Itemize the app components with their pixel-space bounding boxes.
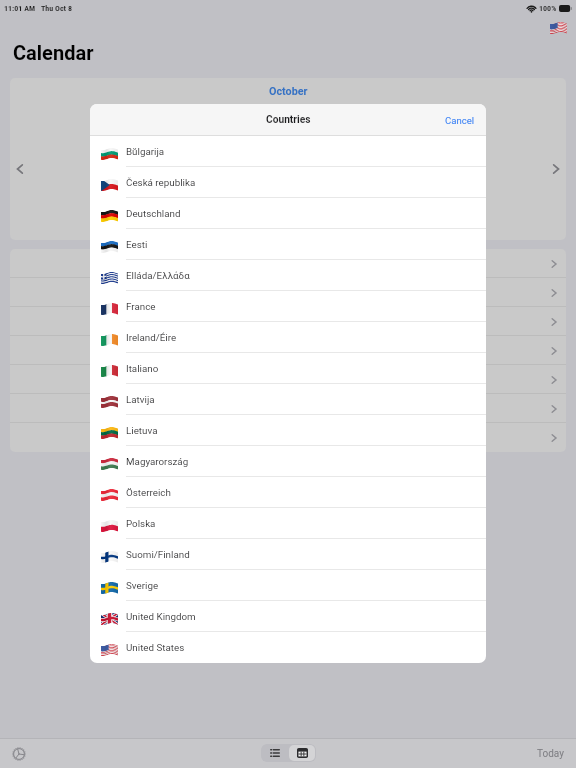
staticText: Österreich — [126, 487, 171, 498]
staticText: Bŭlgarija — [126, 146, 165, 157]
staticText: 100% — [539, 4, 557, 13]
button[interactable]: Bŭlgarija — [90, 136, 486, 167]
staticText: Polska — [126, 518, 156, 529]
button[interactable]: List view — [261, 744, 288, 762]
staticText: Eesti — [126, 239, 148, 250]
staticText: Česká republika — [126, 177, 196, 188]
button[interactable] — [10, 365, 566, 394]
button[interactable] — [10, 307, 566, 336]
button[interactable]: Settings — [12, 747, 26, 761]
button[interactable]: Sverige — [90, 570, 486, 601]
staticText: United States — [126, 642, 185, 653]
button[interactable]: United Kingdom — [90, 601, 486, 632]
staticText: Lietuva — [126, 425, 158, 436]
button[interactable]: Deutschland — [90, 198, 486, 229]
staticText: Italiano — [126, 363, 159, 374]
button[interactable]: Ireland/Éire — [90, 322, 486, 353]
staticText: Sverige — [126, 580, 159, 591]
button[interactable] — [10, 249, 566, 278]
staticText: Latvija — [126, 394, 155, 405]
staticText: Thu Oct 8 — [41, 4, 72, 13]
staticText: Cancel — [445, 115, 475, 126]
button[interactable]: Today — [537, 748, 564, 760]
staticText: Magyarország — [126, 456, 189, 467]
button[interactable]: Magyarország — [90, 446, 486, 477]
button[interactable]: Česká republika — [90, 167, 486, 198]
staticText: Elláda/Ελλάδα — [126, 270, 190, 281]
button[interactable]: Latvija — [90, 384, 486, 415]
button[interactable]: Next month — [547, 160, 565, 178]
button[interactable] — [10, 423, 566, 452]
staticText: Suomi/Finland — [126, 549, 190, 560]
button[interactable]: United States — [90, 632, 486, 663]
staticText: Today — [537, 748, 564, 760]
button[interactable]: Polska — [90, 508, 486, 539]
button[interactable]: France — [90, 291, 486, 322]
button[interactable] — [10, 336, 566, 365]
staticText: United Kingdom — [126, 611, 196, 622]
button[interactable]: Eesti — [90, 229, 486, 260]
staticText: Deutschland — [126, 208, 181, 219]
staticText: Countries — [266, 114, 311, 126]
button[interactable]: Cancel — [445, 115, 475, 126]
button[interactable]: Suomi/Finland — [90, 539, 486, 570]
button[interactable]: Lietuva — [90, 415, 486, 446]
button[interactable]: Calendar view — [289, 745, 315, 761]
staticText: Calendar — [13, 41, 94, 64]
button[interactable]: Region United States — [549, 21, 567, 34]
staticText: October — [269, 85, 308, 98]
staticText: 11:01 AM — [4, 4, 36, 13]
button[interactable]: Elláda/Ελλάδα — [90, 260, 486, 291]
button[interactable] — [10, 394, 566, 423]
staticText: Ireland/Éire — [126, 332, 177, 343]
button[interactable] — [10, 278, 566, 307]
button[interactable]: Previous month — [11, 160, 29, 178]
button[interactable]: Österreich — [90, 477, 486, 508]
staticText: France — [126, 301, 156, 312]
button[interactable]: Italiano — [90, 353, 486, 384]
